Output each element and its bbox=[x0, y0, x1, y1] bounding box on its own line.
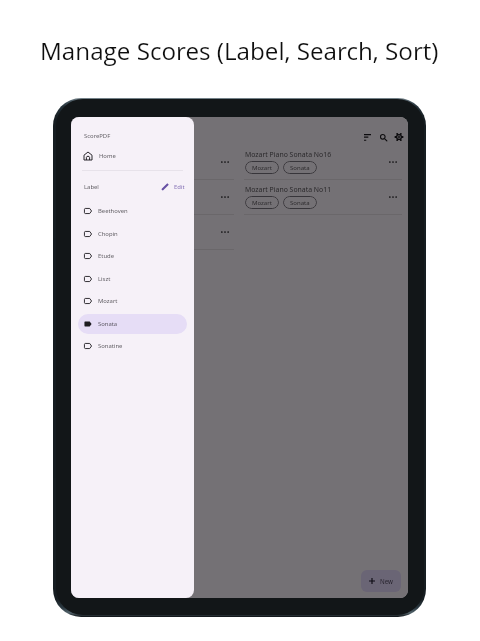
button[interactable]: Mozart bbox=[78, 196, 112, 209]
button[interactable]: Sonata bbox=[116, 231, 150, 244]
button[interactable]: Search bbox=[375, 129, 391, 145]
button[interactable]: Beethoven bbox=[78, 201, 187, 221]
staticText: ScorePDF bbox=[84, 132, 111, 140]
button[interactable]: New bbox=[361, 570, 401, 592]
staticText: Mozart Piano Sonata No15 bbox=[78, 185, 165, 194]
staticText: Mozart Piano Sonata No11 bbox=[245, 185, 332, 194]
button[interactable]: Mozart bbox=[245, 196, 279, 209]
staticText: Sonata bbox=[290, 199, 310, 207]
button[interactable]: Mozart bbox=[245, 161, 279, 174]
staticText: Mozart Piano Sonata No18 bbox=[78, 150, 165, 159]
button[interactable]: Mozart bbox=[78, 161, 112, 174]
button[interactable]: Mozart Piano Sonata No13 bbox=[77, 215, 234, 250]
button[interactable]: Edit bbox=[161, 183, 185, 191]
staticText: Mozart bbox=[252, 164, 272, 172]
button[interactable]: Settings bbox=[391, 129, 407, 145]
staticText: Mozart bbox=[85, 164, 105, 172]
button[interactable]: More options bbox=[218, 225, 232, 239]
button[interactable]: More options bbox=[386, 155, 400, 169]
button[interactable]: Mozart Piano Sonata No16 bbox=[244, 145, 402, 180]
staticText: Edit bbox=[174, 183, 185, 191]
staticText: Home bbox=[99, 152, 116, 160]
staticText: New bbox=[380, 577, 393, 585]
button[interactable]: Mozart Piano Sonata No11 bbox=[244, 180, 402, 215]
staticText: Beethoven bbox=[98, 207, 128, 215]
staticText: Mozart bbox=[252, 199, 272, 207]
staticText: Sonata bbox=[290, 164, 310, 172]
staticText: Sonata bbox=[98, 320, 118, 328]
staticText: Mozart bbox=[98, 297, 118, 305]
staticText: Liszt bbox=[98, 275, 111, 283]
staticText: Chopin bbox=[98, 230, 118, 238]
staticText: Mozart bbox=[85, 234, 105, 242]
button[interactable]: Mozart Piano Sonata No15 bbox=[77, 180, 234, 215]
button[interactable]: Sonata bbox=[283, 196, 317, 209]
button[interactable]: More options bbox=[218, 155, 232, 169]
button[interactable]: More options bbox=[218, 190, 232, 204]
button[interactable]: Sonata bbox=[283, 161, 317, 174]
button[interactable]: Liszt bbox=[78, 269, 187, 289]
button[interactable]: Sort bbox=[359, 129, 375, 145]
staticText: Etude bbox=[98, 252, 114, 260]
button[interactable]: Chopin bbox=[78, 224, 187, 244]
button[interactable]: Sonata bbox=[78, 314, 187, 334]
staticText: Label bbox=[84, 183, 99, 191]
button[interactable]: Sonata bbox=[116, 161, 150, 174]
staticText: Mozart Piano Sonata No16 bbox=[245, 150, 332, 159]
button[interactable]: Etude bbox=[78, 246, 187, 266]
button[interactable]: More options bbox=[386, 190, 400, 204]
staticText: Sonata bbox=[123, 164, 143, 172]
button[interactable]: Mozart bbox=[78, 231, 112, 244]
staticText: Sonatine bbox=[98, 342, 123, 350]
button[interactable]: Home bbox=[78, 146, 187, 165]
button[interactable]: Mozart Piano Sonata No18 bbox=[77, 145, 234, 180]
button[interactable]: Sonatine bbox=[78, 336, 187, 356]
staticText: Manage Scores (Label, Search, Sort) bbox=[40, 34, 439, 67]
button[interactable]: Mozart bbox=[78, 291, 187, 311]
